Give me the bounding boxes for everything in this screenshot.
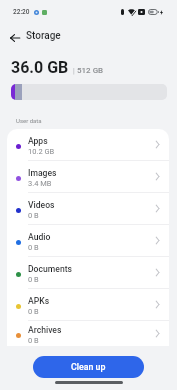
button[interactable]: Apps bbox=[7, 129, 169, 160]
staticText: 0 B bbox=[28, 211, 39, 220]
button[interactable]: Clean up bbox=[33, 356, 144, 378]
staticText: 0 B bbox=[28, 336, 39, 345]
staticText: 0 B bbox=[28, 243, 39, 252]
staticText: Archives bbox=[28, 325, 62, 335]
staticText: Apps bbox=[28, 136, 48, 146]
button[interactable]: APKs bbox=[7, 289, 169, 320]
staticText: 0 B bbox=[28, 307, 39, 316]
staticText: 512 GB bbox=[77, 66, 104, 75]
staticText: Clean up bbox=[71, 362, 106, 372]
staticText: Documents bbox=[28, 264, 72, 274]
staticText: Images bbox=[28, 168, 57, 178]
staticText: 22:20 bbox=[13, 8, 30, 16]
button[interactable]: Videos bbox=[7, 193, 169, 224]
staticText: 36.0 GB bbox=[11, 58, 69, 77]
staticText: 10.2 GB bbox=[28, 147, 55, 156]
staticText: Videos bbox=[28, 200, 55, 210]
button[interactable]: Images bbox=[7, 161, 169, 192]
staticText: APKs bbox=[28, 296, 50, 306]
staticText: Audio bbox=[28, 232, 51, 242]
staticText: 3.4 MB bbox=[28, 179, 52, 188]
staticText: 0 B bbox=[28, 275, 39, 284]
button[interactable]: Audio bbox=[7, 225, 169, 256]
staticText: | bbox=[73, 67, 75, 75]
staticText: Storage bbox=[26, 30, 61, 42]
button[interactable]: Documents bbox=[7, 257, 169, 288]
button[interactable]: Back bbox=[6, 29, 24, 47]
button[interactable]: Archives bbox=[7, 321, 169, 346]
staticText: User data bbox=[16, 117, 42, 124]
